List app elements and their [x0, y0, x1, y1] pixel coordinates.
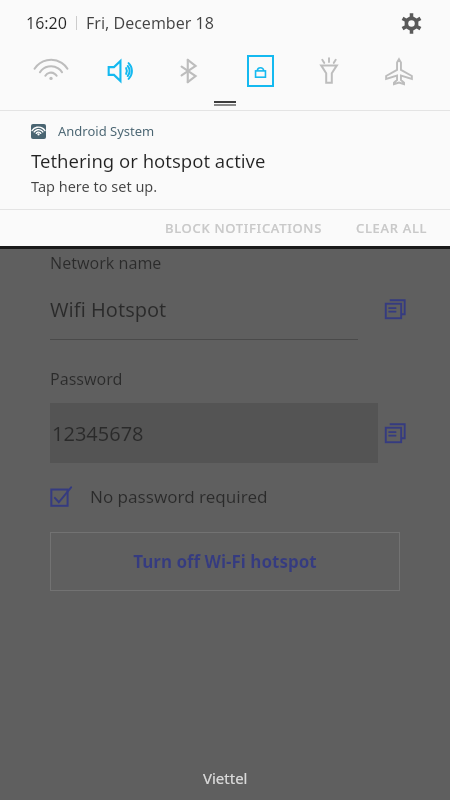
- button[interactable]: Wi-Fi: [27, 47, 75, 95]
- staticText: Tap here to set up.: [31, 176, 158, 196]
- button[interactable]: Copy password: [378, 416, 412, 450]
- button[interactable]: No password required: [50, 481, 268, 512]
- staticText: Tethering or hotspot active: [31, 148, 266, 173]
- staticText: Viettel: [203, 768, 248, 788]
- button[interactable]: Settings: [394, 6, 428, 40]
- staticText: Turn off Wi-Fi hotspot: [133, 550, 317, 573]
- button[interactable]: Copy network name: [378, 292, 412, 326]
- staticText: No password required: [90, 485, 268, 508]
- button[interactable]: Bluetooth: [166, 47, 214, 95]
- staticText: Android System: [58, 122, 155, 140]
- button[interactable]: Sound: [97, 47, 145, 95]
- staticText: Wifi Hotspot: [50, 296, 378, 323]
- button[interactable]: Auto rotate: [236, 47, 284, 95]
- staticText: Fri, December 18: [86, 12, 214, 34]
- button[interactable]: Airplane mode: [375, 47, 423, 95]
- button[interactable]: Flashlight: [305, 47, 353, 95]
- button[interactable]: Turn off Wi-Fi hotspot: [50, 532, 400, 591]
- button[interactable]: Android System: [0, 111, 450, 209]
- button[interactable]: BLOCK NOTIFICATIONS: [153, 212, 334, 244]
- staticText: 12345678: [52, 420, 144, 447]
- button[interactable]: CLEAR ALL: [344, 212, 440, 244]
- staticText: CLEAR ALL: [356, 219, 428, 237]
- staticText: BLOCK NOTIFICATIONS: [165, 219, 322, 237]
- staticText: 16:20: [26, 12, 67, 34]
- staticText: Password: [50, 368, 123, 390]
- staticText: Network name: [50, 252, 162, 274]
